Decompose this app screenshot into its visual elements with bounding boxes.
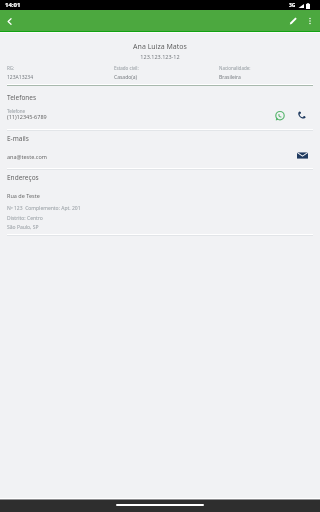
staticText: Rua de Teste [7, 192, 40, 199]
staticText: Ana Luiza Matos [0, 42, 320, 52]
staticText: Endereços [7, 173, 39, 182]
staticText: Brasileira [219, 74, 241, 81]
button[interactable]: WhatsApp [271, 107, 288, 124]
button[interactable]: ana@teste.com [0, 144, 320, 166]
button[interactable]: Ligar [293, 106, 310, 123]
button[interactable]: Rua de Teste [0, 186, 320, 234]
staticText: Telefones [7, 93, 37, 102]
staticText: Estado civil: [114, 65, 139, 71]
button[interactable]: Telefone [0, 103, 320, 126]
staticText: São Paulo, SP [7, 224, 39, 231]
staticText: ana@teste.com [7, 153, 47, 160]
staticText: Distrito: Centro [7, 215, 43, 222]
staticText: 123.123.123-12 [0, 53, 320, 60]
staticText: (11)12345-6789 [7, 113, 47, 120]
staticText: Nº 123 Complemento: Apt. 201 [7, 205, 81, 212]
staticText: 14:01 [5, 1, 21, 9]
button[interactable]: Enviar e-mail [294, 147, 311, 164]
button[interactable]: Mais opções [301, 12, 318, 29]
staticText: Telefone [7, 108, 26, 114]
staticText: Nacionalidade: [219, 65, 251, 71]
staticText: 123A13234 [7, 74, 34, 81]
staticText: Casado(a) [114, 74, 138, 81]
staticText: E-mails [7, 134, 29, 143]
staticText: 3G [289, 2, 296, 9]
button[interactable]: Editar [284, 12, 301, 29]
staticText: RG: [7, 65, 15, 71]
button[interactable]: Voltar [1, 13, 17, 29]
